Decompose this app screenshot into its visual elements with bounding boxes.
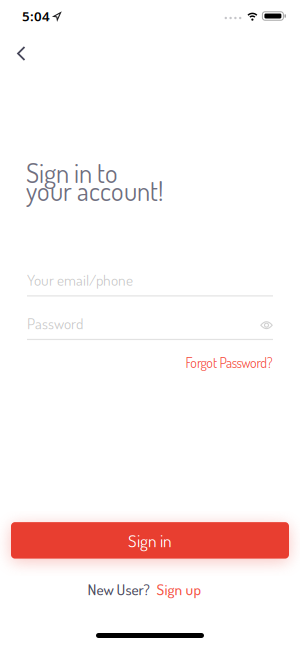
button[interactable]: Sign up	[156, 580, 201, 599]
button[interactable]: Forgot Password?	[185, 354, 273, 371]
staticText: Password	[27, 313, 83, 333]
staticText: your account!	[26, 174, 163, 207]
staticText: Forgot Password?	[185, 354, 273, 371]
staticText: New User?	[87, 580, 149, 599]
staticText: Sign up	[156, 580, 201, 599]
button[interactable]: Sign in	[11, 522, 289, 559]
button[interactable]: Show password	[260, 319, 273, 328]
staticText: Your email/phone	[27, 270, 133, 289]
staticText: Sign in to	[26, 155, 118, 189]
staticText: Sign in	[128, 529, 172, 551]
button[interactable]: Back	[0, 32, 44, 75]
staticText: 5:04	[22, 7, 50, 25]
